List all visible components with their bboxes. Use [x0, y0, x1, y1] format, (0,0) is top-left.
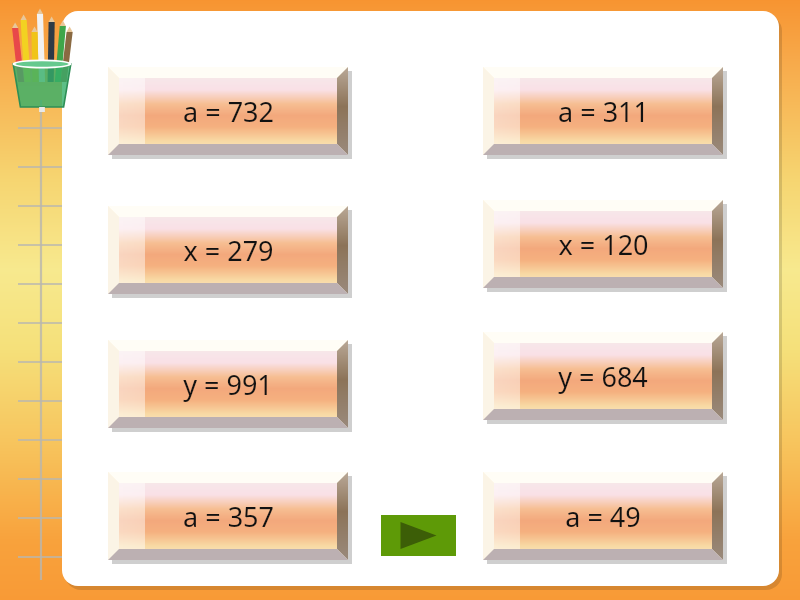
button[interactable]: a = 732: [108, 67, 348, 155]
button[interactable]: x = 120: [483, 200, 723, 288]
button[interactable]: y = 991: [108, 340, 348, 428]
button[interactable]: a = 49: [483, 472, 723, 560]
staticText: a = 732: [183, 93, 274, 130]
staticText: x = 120: [558, 226, 649, 263]
staticText: a = 49: [565, 498, 641, 535]
button[interactable]: a = 357: [108, 472, 348, 560]
staticText: a = 357: [183, 498, 274, 535]
staticText: y = 684: [558, 358, 648, 395]
button[interactable]: Next: [381, 515, 456, 556]
button[interactable]: x = 279: [108, 206, 348, 294]
staticText: x = 279: [183, 232, 274, 269]
staticText: a = 311: [558, 93, 649, 130]
staticText: y = 991: [183, 366, 273, 403]
button[interactable]: y = 684: [483, 332, 723, 420]
button[interactable]: a = 311: [483, 67, 723, 155]
